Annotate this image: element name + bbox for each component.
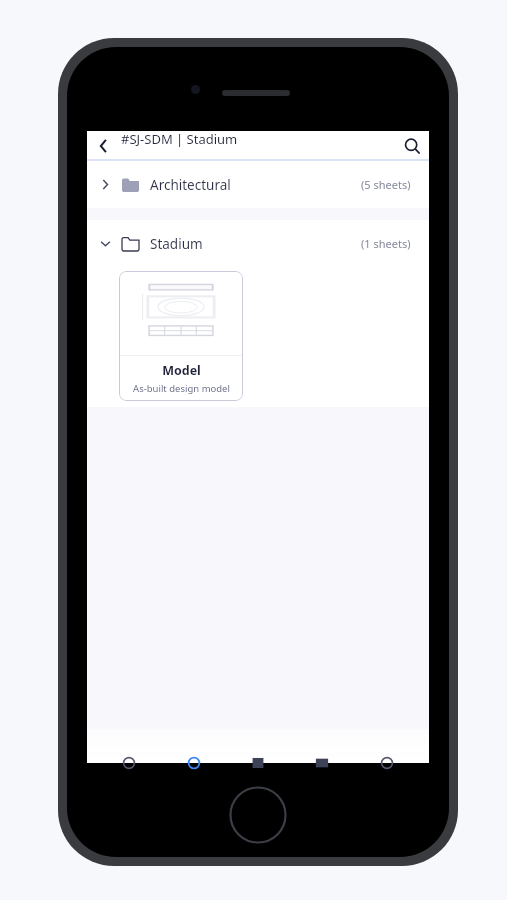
staticText: Model bbox=[162, 362, 201, 379]
button[interactable]: Stadium bbox=[87, 220, 429, 267]
button[interactable]: Home bbox=[107, 729, 151, 763]
staticText: Architectural bbox=[150, 176, 231, 194]
staticText: (5 sheets) bbox=[361, 177, 411, 192]
button[interactable]: Documents bbox=[236, 729, 280, 763]
staticText: Stadium bbox=[150, 235, 203, 253]
button[interactable]: Projects bbox=[172, 729, 216, 763]
staticText: As-built design model bbox=[133, 382, 230, 395]
button[interactable]: Back bbox=[87, 131, 121, 161]
button[interactable]: Search bbox=[395, 131, 429, 161]
button[interactable]: Architectural bbox=[87, 161, 429, 208]
staticText: #SJ-SDM | Stadium bbox=[121, 130, 238, 148]
button[interactable]: Tasks bbox=[300, 729, 344, 763]
button[interactable]: Model bbox=[119, 271, 243, 401]
staticText: (1 sheets) bbox=[361, 236, 411, 251]
button[interactable]: Profile bbox=[365, 729, 409, 763]
